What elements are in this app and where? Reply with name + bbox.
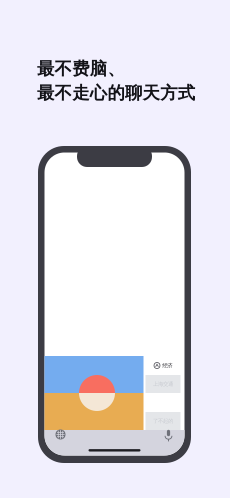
button[interactable]: 上海交通 bbox=[145, 375, 180, 393]
staticText: 上海交通 bbox=[153, 381, 173, 387]
staticText: 最不费脑、 bbox=[37, 58, 124, 79]
staticText: 最不走心的聊天方式 bbox=[37, 82, 195, 104]
button[interactable]: 经济 bbox=[145, 356, 180, 375]
staticText: 了不起的 bbox=[153, 418, 173, 424]
button[interactable]: Dictation bbox=[157, 424, 179, 444]
staticText: 经济 bbox=[162, 362, 172, 369]
button[interactable]: 了不起的 bbox=[145, 412, 180, 430]
button[interactable]: Switch keyboard language bbox=[49, 424, 71, 444]
